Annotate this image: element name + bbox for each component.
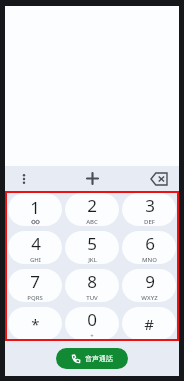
button[interactable]: Add: [79, 166, 105, 191]
staticText: PQRS: [27, 294, 43, 302]
staticText: 7: [30, 270, 40, 293]
staticText: 3: [145, 194, 155, 217]
staticText: #: [144, 314, 154, 334]
staticText: MNO: [142, 256, 157, 264]
button[interactable]: 8: [65, 269, 119, 302]
staticText: 4: [31, 232, 41, 255]
button[interactable]: 0: [65, 307, 119, 340]
staticText: 2: [87, 194, 97, 217]
staticText: JKL: [88, 256, 97, 264]
button[interactable]: 1: [8, 193, 62, 226]
button[interactable]: *: [8, 307, 62, 340]
button[interactable]: #: [122, 307, 176, 340]
staticText: DEF: [144, 218, 155, 226]
staticText: TUV: [86, 294, 98, 302]
button[interactable]: 3: [122, 193, 176, 226]
staticText: *: [31, 314, 40, 334]
button[interactable]: 2: [65, 193, 119, 226]
button[interactable]: 4: [8, 231, 62, 264]
staticText: 音声通話: [85, 354, 113, 363]
staticText: 5: [87, 232, 97, 255]
staticText: +: [90, 332, 94, 340]
button[interactable]: 7: [8, 269, 62, 302]
staticText: GHI: [30, 256, 41, 264]
staticText: ABC: [86, 218, 98, 226]
staticText: WXYZ: [141, 294, 158, 302]
staticText: 6: [145, 232, 155, 255]
button[interactable]: 9: [122, 269, 176, 302]
staticText: 8: [87, 270, 97, 293]
staticText: 0: [87, 308, 97, 331]
staticText: 1: [30, 196, 40, 219]
button[interactable]: More options: [12, 167, 36, 191]
staticText: 9: [145, 270, 155, 293]
button[interactable]: 音声通話: [56, 348, 128, 369]
button[interactable]: 5: [65, 231, 119, 264]
button[interactable]: 6: [122, 231, 176, 264]
button[interactable]: Backspace: [146, 166, 172, 191]
